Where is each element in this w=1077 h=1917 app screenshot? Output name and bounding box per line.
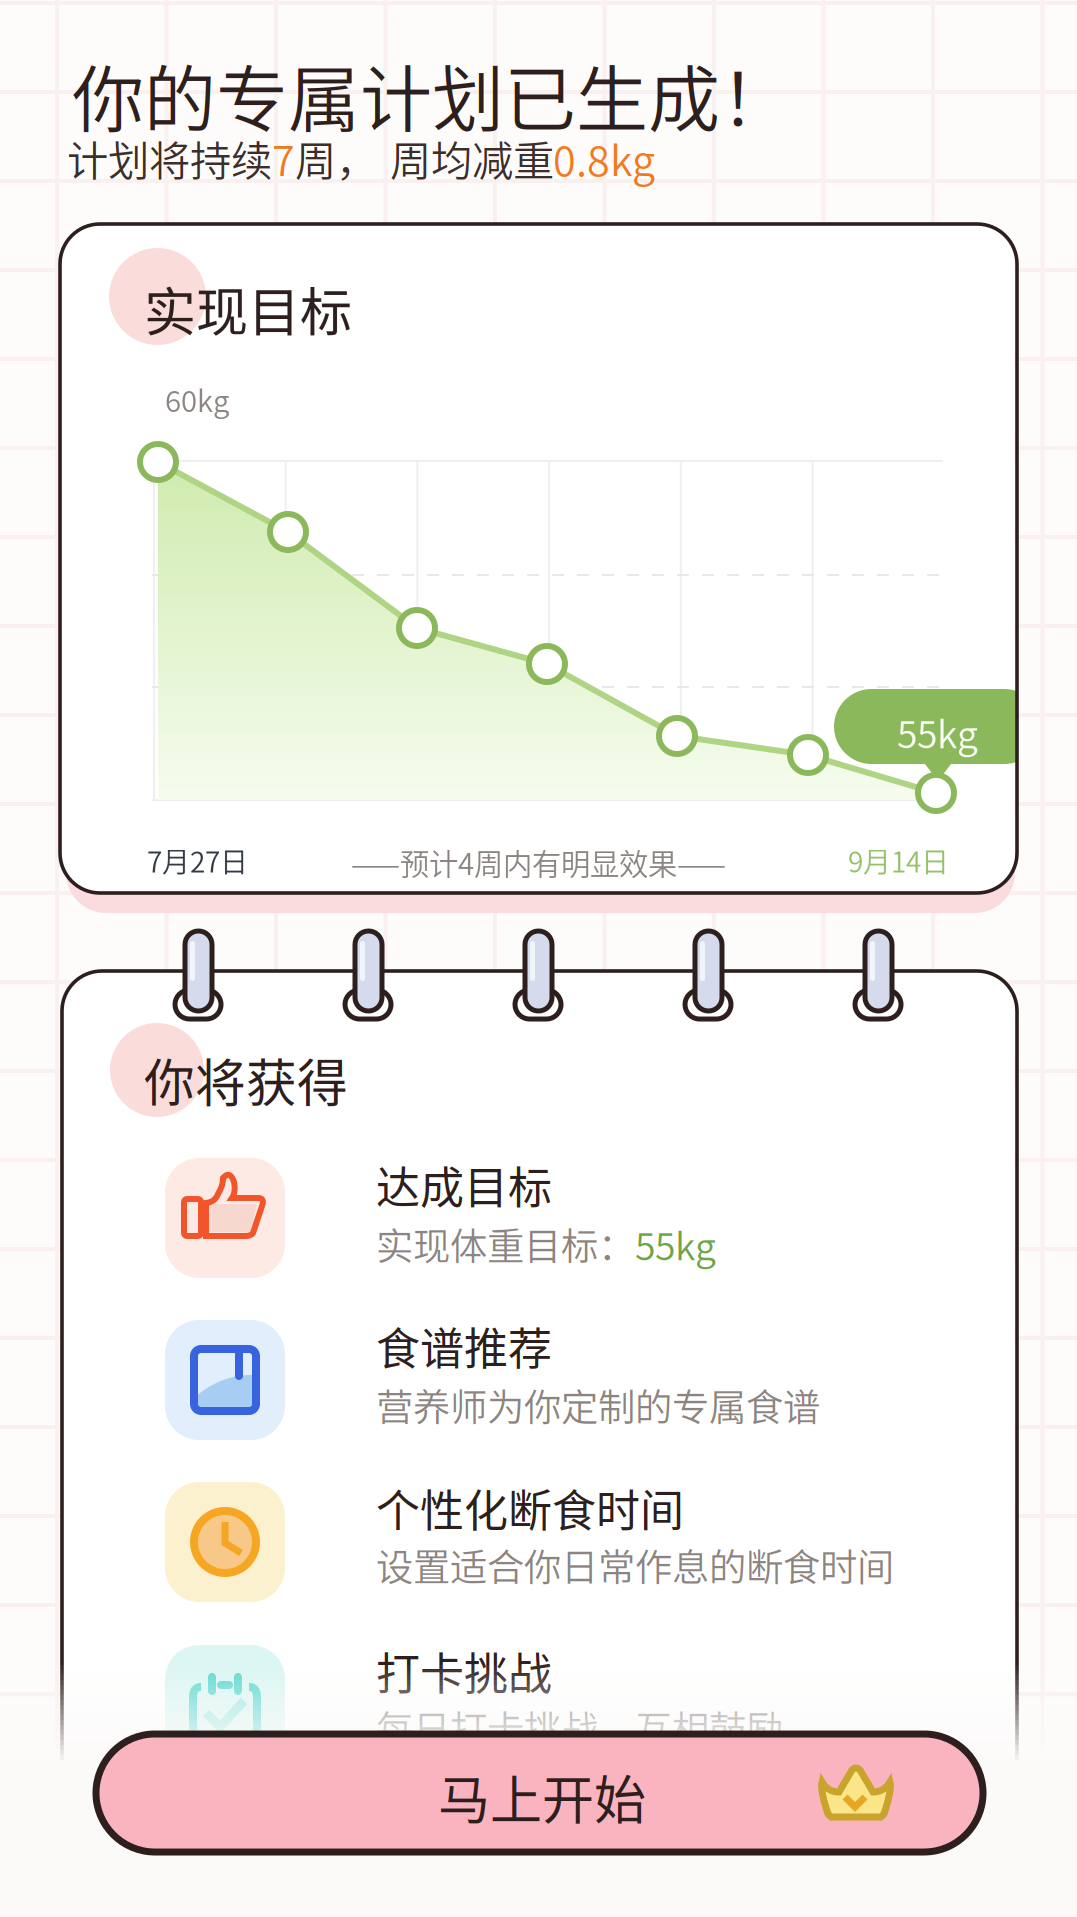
staticText: 打卡挑战 — [376, 1639, 552, 1703]
staticText: 实现体重目标： — [376, 1217, 635, 1271]
staticText: 营养师为你定制的专属食谱 — [376, 1378, 820, 1432]
staticText: 设置适合你日常作息的断食时间 — [376, 1538, 894, 1592]
staticText: 7月27日 — [147, 840, 248, 880]
staticText: 个性化断食时间 — [376, 1476, 684, 1540]
staticText: 60kg — [165, 378, 229, 420]
staticText: 0.8kg — [553, 128, 655, 188]
staticText: 达成目标 — [376, 1153, 552, 1217]
staticText: 每日打卡挑战，互相鼓励 — [376, 1700, 783, 1754]
staticText: 马上开始 — [438, 1759, 646, 1834]
staticText: 55kg — [897, 705, 978, 759]
staticText: 计划将持续 — [67, 128, 272, 188]
staticText: 周， — [295, 128, 377, 188]
staticText: 55kg — [635, 1217, 716, 1271]
staticText: 实现目标 — [144, 271, 352, 346]
staticText: 7 — [272, 128, 295, 188]
staticText: 食谱推荐 — [376, 1314, 552, 1378]
staticText: ——预计4周内有明显效果—— — [351, 841, 726, 883]
staticText: 你的专属计划已生成！ — [72, 42, 792, 146]
button[interactable]: 马上开始 — [96, 1734, 983, 1852]
staticText: 9月14日 — [848, 840, 949, 880]
staticText: 周均减重 — [390, 128, 554, 188]
staticText: 你将获得 — [144, 1043, 348, 1116]
